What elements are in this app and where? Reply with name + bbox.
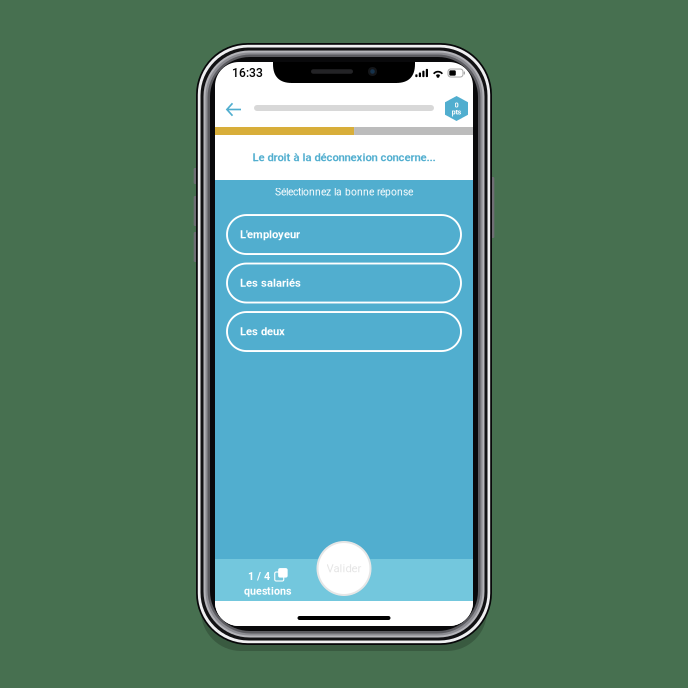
- staticText: 16:33: [232, 66, 263, 80]
- button[interactable]: L'employeur: [227, 215, 461, 254]
- staticText: Sélectionnez la bonne réponse: [275, 186, 413, 198]
- staticText: Valider: [326, 562, 361, 575]
- button[interactable]: Back: [215, 87, 254, 124]
- staticText: 1 / 4: [248, 570, 270, 582]
- staticText: Les deux: [240, 325, 285, 338]
- staticText: questions: [244, 585, 291, 597]
- staticText: pts: [451, 108, 461, 116]
- staticText: Les salariés: [240, 276, 301, 290]
- staticText: Le droit à la déconnexion concerne...: [252, 151, 435, 164]
- button[interactable]: Points: [434, 87, 473, 124]
- staticText: 0: [454, 101, 458, 109]
- button[interactable]: Les salariés: [227, 263, 461, 302]
- staticText: L'employeur: [240, 228, 300, 241]
- button[interactable]: Les deux: [227, 312, 461, 351]
